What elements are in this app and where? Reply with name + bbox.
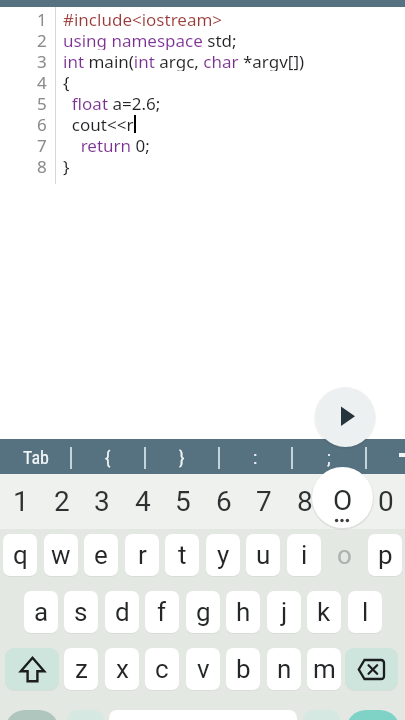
button[interactable]: p — [368, 534, 402, 576]
button[interactable]: c — [145, 648, 179, 690]
button[interactable]: 9 — [324, 474, 365, 529]
button[interactable]: 3 — [81, 474, 122, 529]
staticText: 3 — [94, 485, 110, 518]
staticText: 6 — [37, 113, 47, 134]
staticText: 1 — [13, 485, 29, 518]
staticText: 2 — [54, 485, 70, 518]
staticText: 9 — [337, 485, 353, 518]
staticText: 7 — [256, 485, 272, 518]
staticText: { — [105, 447, 111, 468]
button[interactable] — [5, 648, 59, 690]
button[interactable] — [346, 710, 400, 720]
staticText: Tab — [23, 447, 49, 468]
staticText: 1 — [37, 8, 47, 29]
staticText: } — [179, 447, 185, 468]
button[interactable]: w — [44, 534, 78, 576]
staticText: 5 — [37, 92, 47, 113]
button[interactable]: v — [186, 648, 220, 690]
staticText: d — [115, 597, 130, 627]
staticText: c — [155, 654, 169, 684]
staticText: 5 — [175, 485, 191, 518]
button[interactable]: 0 — [365, 474, 405, 529]
staticText: ; — [327, 447, 331, 468]
staticText: k — [317, 597, 331, 627]
staticText: 7 — [37, 134, 47, 155]
staticText: { — [63, 71, 70, 92]
staticText: p — [378, 540, 393, 570]
staticText: t — [178, 540, 187, 570]
staticText: int main(int argc, char *argv[]) — [63, 50, 305, 71]
staticText: q — [13, 540, 28, 570]
staticText: b — [236, 654, 251, 684]
staticText: O — [333, 484, 353, 517]
button[interactable]: 4 — [122, 474, 163, 529]
staticText: 2 — [37, 29, 47, 50]
button[interactable]: 2 — [41, 474, 82, 529]
staticText: } — [63, 155, 70, 176]
staticText: a — [34, 597, 49, 627]
button[interactable]: x — [105, 648, 139, 690]
button[interactable]: 1 — [0, 474, 41, 529]
button[interactable]: r — [125, 534, 159, 576]
button[interactable]: u — [246, 534, 280, 576]
button[interactable]: i — [287, 534, 321, 576]
button[interactable]: b — [226, 648, 260, 690]
button[interactable] — [5, 710, 59, 720]
button[interactable]: 7 — [243, 474, 284, 529]
button[interactable]: a — [24, 591, 58, 633]
staticText: i — [301, 540, 308, 570]
button[interactable]: h — [226, 591, 260, 633]
staticText: y — [217, 540, 230, 570]
button[interactable]: n — [267, 648, 301, 690]
staticText: 8 — [37, 155, 47, 176]
button[interactable] — [303, 710, 340, 720]
staticText: x — [116, 654, 129, 684]
staticText: 4 — [37, 71, 47, 92]
button[interactable]: : — [220, 439, 290, 474]
staticText: j — [281, 597, 288, 627]
staticText: u — [256, 540, 271, 570]
button[interactable]: 8 — [284, 474, 325, 529]
button[interactable]: Tab — [1, 439, 71, 474]
button[interactable]: z — [64, 648, 98, 690]
button[interactable]: { — [73, 439, 143, 474]
button[interactable]: q — [3, 534, 37, 576]
staticText: 0 — [378, 485, 394, 518]
button[interactable]: d — [105, 591, 139, 633]
button[interactable]: e — [84, 534, 118, 576]
staticText: f — [157, 597, 167, 627]
staticText: using namespace std; — [63, 29, 237, 50]
button[interactable]: t — [165, 534, 199, 576]
button[interactable]: 6 — [203, 474, 244, 529]
button[interactable]: O — [312, 467, 373, 528]
button[interactable] — [67, 710, 104, 720]
button[interactable]: k — [307, 591, 341, 633]
button[interactable] — [109, 710, 297, 720]
staticText: z — [75, 654, 88, 684]
button[interactable]: } — [147, 439, 217, 474]
staticText: return 0; — [63, 134, 150, 155]
staticText: : — [253, 447, 258, 468]
staticText: v — [197, 654, 210, 684]
button[interactable]: s — [64, 591, 98, 633]
staticText: n — [277, 654, 292, 684]
button[interactable]: ; — [294, 439, 364, 474]
staticText: s — [74, 597, 88, 627]
button[interactable]: l — [348, 591, 382, 633]
button[interactable]: y — [206, 534, 240, 576]
staticText: o — [337, 540, 352, 570]
button[interactable] — [316, 388, 375, 447]
button[interactable]: m — [307, 648, 341, 690]
staticText: h — [236, 597, 251, 627]
button[interactable]: j — [267, 591, 301, 633]
staticText: r — [138, 540, 147, 570]
button[interactable]: o — [327, 534, 361, 576]
staticText: 6 — [216, 485, 232, 518]
button[interactable] — [345, 648, 398, 690]
staticText: g — [196, 597, 211, 627]
staticText: 3 — [37, 50, 47, 71]
button[interactable]: f — [145, 591, 179, 633]
button[interactable]: 5 — [162, 474, 203, 529]
staticText: #include<iostream> — [63, 8, 223, 29]
button[interactable]: g — [186, 591, 220, 633]
